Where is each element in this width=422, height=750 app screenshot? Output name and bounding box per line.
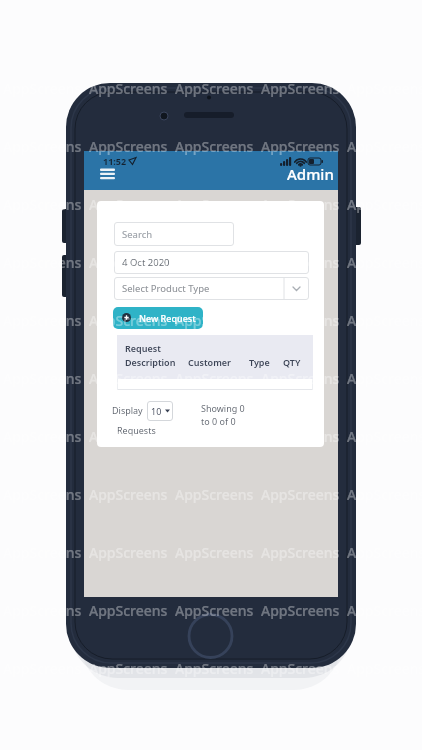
staticText: AppScreens — [3, 601, 82, 620]
staticText: AppScreens — [347, 253, 422, 272]
staticText: AppScreens — [347, 311, 422, 330]
staticText: Search — [122, 228, 153, 241]
staticText: AppScreens — [3, 427, 82, 446]
staticText: Showing 0 — [201, 402, 245, 414]
staticText: Display — [112, 404, 143, 416]
staticText: AppScreens — [261, 601, 340, 620]
staticText: New Request — [139, 312, 196, 324]
button[interactable]: Select Product Type — [114, 277, 309, 300]
staticText: AppScreens — [347, 485, 422, 504]
staticText: AppScreens — [175, 485, 254, 504]
staticText: AppScreens — [3, 253, 82, 272]
staticText: AppScreens — [3, 79, 82, 98]
staticText: AppScreens — [89, 543, 168, 562]
staticText: AppScreens — [175, 195, 254, 214]
staticText: AppScreens — [347, 601, 422, 620]
staticText: Customer — [188, 356, 231, 368]
staticText: AppScreens — [261, 79, 340, 98]
staticText: QTY — [283, 356, 301, 368]
staticText: AppScreens — [89, 195, 168, 214]
staticText: AppScreens — [3, 137, 82, 156]
staticText: AppScreens — [89, 659, 168, 678]
staticText: AppScreens — [89, 601, 168, 620]
staticText: to 0 of 0 — [201, 415, 236, 427]
staticText: AppScreens — [89, 253, 168, 272]
staticText: AppScreens — [89, 137, 168, 156]
button[interactable]: Admin — [287, 164, 334, 184]
staticText: AppScreens — [3, 311, 82, 330]
staticText: AppScreens — [347, 137, 422, 156]
button[interactable]: 4 Oct 2020 — [114, 251, 309, 274]
staticText: AppScreens — [3, 195, 82, 214]
staticText: AppScreens — [89, 485, 168, 504]
staticText: AppScreens — [175, 601, 254, 620]
staticText: AppScreens — [175, 311, 254, 330]
staticText: AppScreens — [3, 369, 82, 388]
staticText: AppScreens — [89, 79, 168, 98]
staticText: 4 Oct 2020 — [122, 256, 170, 269]
staticText: AppScreens — [175, 137, 254, 156]
staticText: Select Product Type — [122, 282, 210, 295]
staticText: AppScreens — [261, 485, 340, 504]
staticText: Type — [249, 356, 270, 368]
staticText: AppScreens — [89, 427, 168, 446]
staticText: Request — [125, 342, 161, 354]
staticText: 10 — [151, 405, 162, 417]
staticText: AppScreens — [89, 369, 168, 388]
staticText: AppScreens — [261, 195, 340, 214]
staticText: AppScreens — [3, 543, 82, 562]
staticText: 11:52 — [103, 155, 127, 167]
staticText: AppScreens — [347, 195, 422, 214]
staticText: AppScreens — [261, 311, 340, 330]
staticText: AppScreens — [261, 369, 340, 388]
button[interactable]: New Request — [113, 307, 203, 329]
staticText: AppScreens — [175, 659, 254, 678]
staticText: Description — [125, 356, 176, 368]
button[interactable]: Search — [114, 222, 234, 246]
staticText: AppScreens — [347, 427, 422, 446]
staticText: AppScreens — [261, 543, 340, 562]
staticText: AppScreens — [175, 369, 254, 388]
staticText: AppScreens — [175, 543, 254, 562]
staticText: AppScreens — [3, 485, 82, 504]
staticText: AppScreens — [261, 659, 340, 678]
staticText: AppScreens — [261, 253, 340, 272]
staticText: AppScreens — [89, 311, 168, 330]
staticText: AppScreens — [261, 137, 340, 156]
staticText: AppScreens — [347, 543, 422, 562]
button[interactable]: 10 — [147, 401, 173, 421]
staticText: AppScreens — [347, 369, 422, 388]
staticText: Requests — [117, 424, 156, 436]
staticText: AppScreens — [175, 79, 254, 98]
staticText: AppScreens — [261, 427, 340, 446]
